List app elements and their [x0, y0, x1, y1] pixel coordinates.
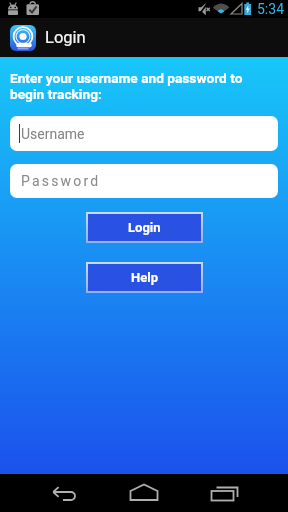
button[interactable]	[0, 474, 96, 512]
button[interactable]: Username	[10, 116, 278, 151]
staticText: 5:34	[257, 1, 284, 17]
button[interactable]: Help	[88, 264, 201, 291]
staticText: Username	[21, 126, 85, 142]
staticText: Login	[128, 220, 161, 235]
staticText: Help	[131, 270, 158, 285]
staticText: Password	[21, 173, 101, 189]
button[interactable]: Login	[88, 214, 201, 241]
button[interactable]	[192, 474, 288, 512]
staticText: Enter your username and password to begi…	[10, 70, 243, 102]
staticText: Login	[45, 28, 86, 47]
button[interactable]	[96, 474, 192, 512]
button[interactable]: Password	[10, 164, 278, 198]
